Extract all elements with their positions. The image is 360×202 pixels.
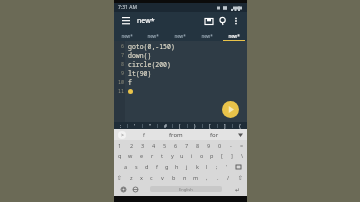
staticText: new* (147, 33, 159, 39)
button[interactable]: u (177, 150, 187, 161)
staticText: 9 (121, 70, 125, 77)
button[interactable]: r (147, 150, 157, 161)
button[interactable]: i (187, 150, 197, 161)
staticText: ; (216, 163, 218, 170)
button[interactable]: [ (217, 150, 227, 161)
button[interactable]: n (179, 172, 190, 183)
button[interactable]: x (136, 172, 146, 183)
button[interactable]: Menu (119, 14, 133, 28)
staticText: new* (137, 16, 155, 26)
button[interactable]: Shift (114, 172, 126, 183)
staticText: - (230, 142, 232, 149)
button[interactable]: y (167, 150, 177, 161)
button[interactable]: t (157, 150, 167, 161)
button[interactable]: ' (128, 122, 142, 129)
button[interactable]: new* (140, 30, 166, 41)
staticText: ↵ (235, 186, 241, 193)
button[interactable]: c (146, 172, 157, 183)
button[interactable]: 5 (159, 140, 170, 150)
button[interactable]: Expand suggestions (233, 129, 247, 140)
button[interactable]: 4 (148, 140, 159, 150)
button[interactable]: g (162, 161, 172, 172)
button[interactable]: 1 (114, 140, 126, 150)
button[interactable]: # (158, 122, 172, 129)
button[interactable]: Backspace (232, 161, 244, 172)
button[interactable]: 9 (203, 140, 214, 150)
button[interactable]: b (168, 172, 179, 183)
button[interactable]: h (172, 161, 182, 172)
button[interactable]: k (192, 161, 202, 172)
button[interactable]: Enter (232, 183, 244, 195)
button[interactable]: Change language (129, 183, 141, 195)
button[interactable]: new* (193, 30, 220, 41)
staticText: h (175, 163, 179, 170)
staticText: d (145, 163, 149, 170)
button[interactable]: English (150, 186, 222, 192)
button[interactable]: Search (216, 14, 230, 28)
button[interactable]: q (114, 150, 125, 161)
button[interactable]: ) (188, 122, 202, 129)
staticText: ' (226, 163, 228, 170)
staticText: : (120, 123, 122, 129)
button[interactable]: new* (114, 30, 140, 41)
button[interactable]: 8 (192, 140, 203, 150)
button[interactable]: , (201, 172, 212, 183)
button[interactable]: new* (166, 30, 193, 41)
button[interactable]: for (195, 129, 233, 140)
button[interactable]: Previous suggestion (114, 129, 130, 140)
staticText: > (121, 132, 124, 139)
staticText: o (200, 152, 204, 159)
button[interactable]: ( (173, 122, 187, 129)
button[interactable]: More options (230, 15, 242, 27)
button[interactable]: e (136, 150, 147, 161)
button[interactable]: new* (220, 30, 247, 41)
button[interactable]: from (157, 129, 195, 140)
staticText: t (161, 152, 163, 159)
staticText: # (164, 123, 167, 129)
staticText: 3 (141, 142, 145, 149)
button[interactable]: 7 (181, 140, 192, 150)
staticText: z (130, 174, 133, 181)
button[interactable]: { (233, 122, 247, 129)
button[interactable]: v (157, 172, 168, 183)
button[interactable]: f (152, 161, 162, 172)
button[interactable]: . (212, 172, 223, 183)
button[interactable]: w (125, 150, 136, 161)
button[interactable]: \ (237, 150, 247, 161)
button[interactable]: z (126, 172, 136, 183)
button[interactable]: d (142, 161, 152, 172)
button[interactable]: " (143, 122, 157, 129)
button[interactable]: 3 (137, 140, 148, 150)
button[interactable]: j (182, 161, 192, 172)
staticText: 8 (121, 61, 125, 68)
button[interactable]: s (131, 161, 142, 172)
staticText: new* (201, 33, 213, 39)
staticText: 9 (207, 142, 211, 149)
button[interactable]: - (225, 140, 236, 150)
button[interactable]: p (207, 150, 217, 161)
button[interactable]: = (236, 140, 247, 150)
button[interactable]: Shift (234, 172, 247, 183)
button[interactable]: ' (222, 161, 232, 172)
button[interactable]: ] (227, 150, 237, 161)
button[interactable]: f (130, 129, 157, 140)
button[interactable]: / (223, 172, 234, 183)
button[interactable]: Run (222, 101, 239, 118)
staticText: i (191, 152, 193, 159)
button[interactable]: l (202, 161, 212, 172)
button[interactable]: Settings (117, 183, 129, 195)
button[interactable]: ; (212, 161, 222, 172)
button[interactable]: o (197, 150, 207, 161)
button[interactable]: m (190, 172, 201, 183)
button[interactable]: 6 (170, 140, 181, 150)
staticText: e (140, 152, 144, 159)
button[interactable]: [ (203, 122, 217, 129)
staticText: 8 (196, 142, 200, 149)
button[interactable]: ] (218, 122, 232, 129)
button[interactable]: Save (202, 14, 216, 28)
staticText: 7 (185, 142, 189, 149)
button[interactable]: a (120, 161, 131, 172)
button[interactable]: 2 (126, 140, 137, 150)
button[interactable]: : (114, 122, 127, 129)
button[interactable]: 0 (214, 140, 225, 150)
